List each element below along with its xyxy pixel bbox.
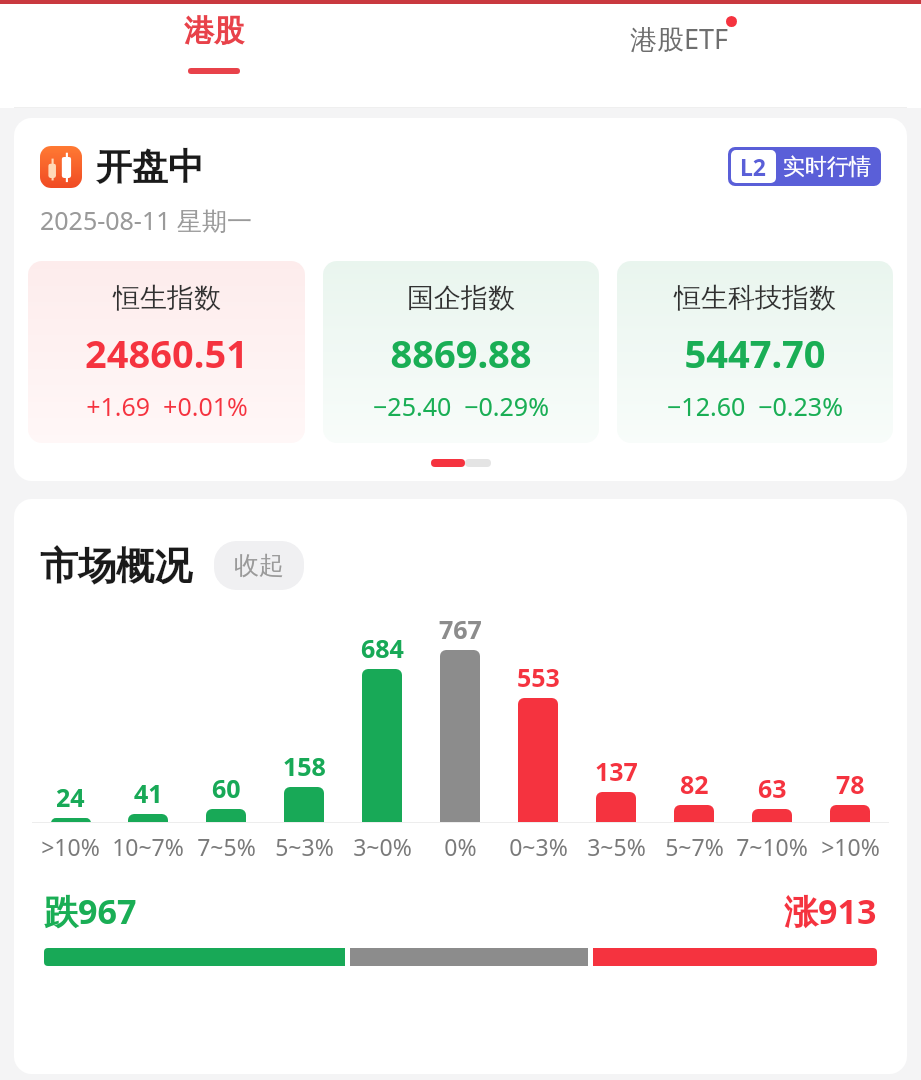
staticText: L2 — [740, 151, 767, 182]
staticText: >10% — [821, 831, 880, 862]
staticText: 0~3% — [509, 831, 568, 862]
staticText: 7~5% — [197, 831, 256, 862]
staticText: 市场概况 — [40, 542, 192, 590]
staticText: 3~0% — [353, 831, 412, 862]
button[interactable]: 收起 — [214, 541, 304, 590]
staticText: 7~10% — [736, 831, 808, 862]
staticText: 港股 — [184, 12, 244, 50]
staticText: 63 — [758, 771, 787, 805]
staticText: 收起 — [234, 550, 284, 581]
staticText: 24 — [56, 780, 85, 814]
staticText: 684 — [361, 631, 404, 665]
button[interactable]: 恒生指数 — [28, 261, 305, 443]
button[interactable]: L2 — [728, 147, 881, 186]
staticText: +1.69 +0.01% — [86, 389, 248, 423]
staticText: 24860.51 — [85, 327, 248, 379]
staticText: 恒生科技指数 — [674, 281, 836, 315]
staticText: 5447.70 — [684, 327, 826, 379]
staticText: 2025-08-11 星期一 — [40, 203, 253, 237]
staticText: 5~3% — [275, 831, 334, 862]
staticText: 10~7% — [112, 831, 184, 862]
staticText: 158 — [283, 749, 326, 783]
staticText: 137 — [595, 754, 638, 788]
staticText: 82 — [680, 767, 709, 801]
staticText: 8869.88 — [390, 327, 532, 379]
staticText: 41 — [134, 776, 163, 810]
staticText: 国企指数 — [407, 281, 515, 315]
staticText: 3~5% — [587, 831, 646, 862]
staticText: 78 — [836, 767, 865, 801]
staticText: 0% — [444, 831, 477, 862]
staticText: 港股ETF — [630, 20, 729, 57]
button[interactable]: 恒生科技指数 — [617, 261, 893, 443]
staticText: −25.40 −0.29% — [373, 389, 549, 423]
staticText: 涨913 — [784, 888, 877, 934]
staticText: 跌967 — [44, 888, 137, 934]
staticText: 5~7% — [665, 831, 724, 862]
button[interactable]: 港股ETF — [620, 14, 739, 63]
staticText: >10% — [41, 831, 100, 862]
staticText: 60 — [212, 771, 241, 805]
other: Market open — [40, 146, 82, 188]
staticText: 开盘中 — [96, 144, 204, 189]
staticText: 767 — [439, 612, 482, 646]
button[interactable]: 国企指数 — [323, 261, 599, 443]
staticText: 实时行情 — [783, 153, 871, 181]
staticText: 553 — [517, 660, 560, 694]
button[interactable]: 港股 — [170, 4, 258, 82]
staticText: 恒生指数 — [113, 281, 221, 315]
staticText: −12.60 −0.23% — [667, 389, 843, 423]
